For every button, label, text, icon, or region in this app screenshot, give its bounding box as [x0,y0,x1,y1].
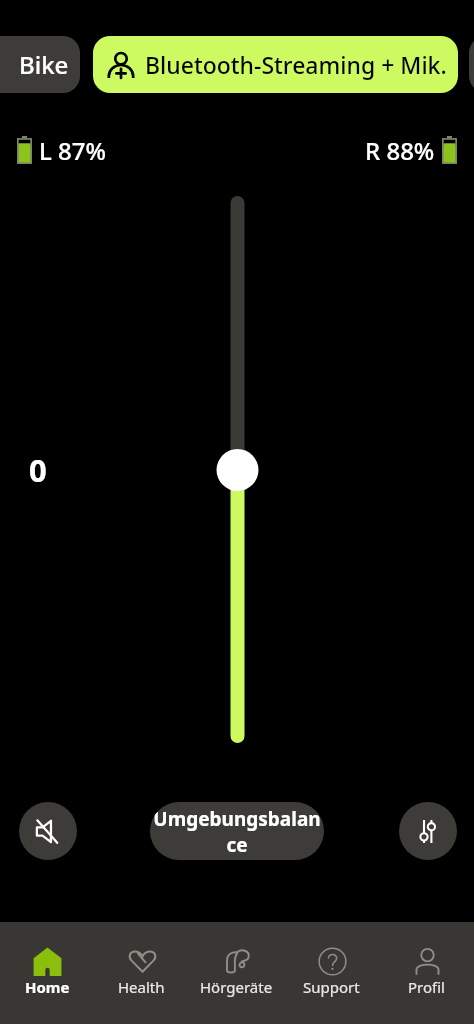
staticText: Umgebungsbalance [152,806,322,857]
button[interactable]: More programs [469,36,474,93]
button[interactable]: Health [94,922,189,1024]
button[interactable]: Volume slider [208,186,267,757]
button[interactable]: Profil [379,922,474,1024]
staticText: Bike [19,48,69,81]
button[interactable]: Mute [19,802,77,860]
button[interactable]: Support [284,922,379,1024]
button[interactable]: Home [0,922,94,1024]
staticText: L 87% [39,134,106,167]
button[interactable]: Umgebungsbalance [150,802,324,860]
button[interactable]: Bike [0,36,80,93]
button[interactable]: Bluetooth-Streaming + Mik. [93,36,458,93]
staticText: Bluetooth-Streaming + Mik. [145,49,447,80]
staticText: Home [25,977,70,997]
staticText: Hörgeräte [200,977,273,997]
staticText: Health [118,977,165,997]
staticText: Profil [408,977,445,997]
button[interactable]: Hörgeräte [189,922,284,1024]
staticText: Support [303,977,360,997]
staticText: R 88% [365,134,435,167]
staticText: 0 [29,449,47,491]
button[interactable]: Equalizer settings [399,802,457,860]
